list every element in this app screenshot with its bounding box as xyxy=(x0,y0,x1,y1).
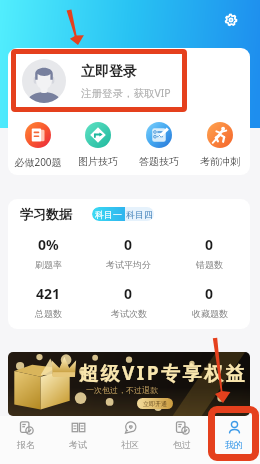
staticText: 考试 xyxy=(69,439,87,450)
button[interactable]: Settings xyxy=(224,13,238,27)
button[interactable]: 科目一 xyxy=(92,207,125,221)
staticText: 考试次数 xyxy=(111,308,147,319)
staticText: 0 xyxy=(124,284,133,303)
button[interactable]: 考试 xyxy=(52,416,104,464)
staticText: 必做200题 xyxy=(14,155,62,169)
staticText: 立即登录 xyxy=(81,63,137,81)
button[interactable]: 图片技巧 xyxy=(68,114,128,168)
staticText: 0% xyxy=(38,235,59,254)
button[interactable]: 报名 xyxy=(0,416,52,464)
button[interactable]: 社区 xyxy=(104,416,156,464)
staticText: 超级VIP专享权益 xyxy=(79,360,248,386)
staticText: 答题技巧 xyxy=(139,155,179,168)
staticText: 立即开通 xyxy=(143,400,167,408)
staticText: 收藏题数 xyxy=(192,308,228,319)
button[interactable]: 包过 xyxy=(156,416,208,464)
button[interactable]: 科目四 xyxy=(125,207,154,221)
button[interactable]: 超级VIP专享权益 xyxy=(8,352,250,416)
staticText: 考试平均分 xyxy=(106,259,151,270)
staticText: 考前冲刺 xyxy=(200,155,240,168)
staticText: 报名 xyxy=(17,439,35,450)
staticText: 社区 xyxy=(121,439,139,450)
staticText: 注册登录，获取VIP xyxy=(81,86,171,100)
staticText: 科目一 xyxy=(95,209,122,220)
staticText: 错题数 xyxy=(196,259,223,270)
staticText: 0 xyxy=(124,235,133,254)
button[interactable]: 立即登录 xyxy=(8,48,250,114)
button[interactable]: 答题技巧 xyxy=(128,114,189,168)
staticText: 刷题率 xyxy=(35,259,62,270)
staticText: 421 xyxy=(36,284,61,303)
staticText: 学习数据 xyxy=(20,206,72,222)
staticText: 图片技巧 xyxy=(78,155,118,168)
button[interactable]: 必做200题 xyxy=(8,114,68,169)
staticText: 0 xyxy=(205,235,214,254)
staticText: 科目四 xyxy=(126,209,153,220)
staticText: 0 xyxy=(205,284,214,303)
staticText: 总题数 xyxy=(35,308,62,319)
staticText: 我的 xyxy=(225,439,243,450)
staticText: 包过 xyxy=(173,439,191,450)
button[interactable]: 我的 xyxy=(208,416,260,464)
button[interactable]: 考前冲刺 xyxy=(189,114,250,168)
staticText: 一次包过，不过退款 xyxy=(86,385,158,395)
